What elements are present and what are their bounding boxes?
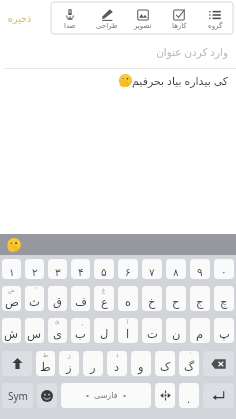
staticText: وارد کردن عنوان xyxy=(0,45,228,59)
staticText: ه xyxy=(125,295,132,308)
staticText: ئ xyxy=(55,319,60,325)
button[interactable]: طراحی xyxy=(88,2,125,34)
staticText: و xyxy=(138,360,144,373)
staticText: ع xyxy=(101,295,108,308)
button[interactable]: Shift xyxy=(2,351,32,376)
button[interactable]: تصویر xyxy=(125,2,161,34)
button[interactable]: چ xyxy=(214,286,234,311)
button[interactable]: ٍ xyxy=(71,318,90,343)
button[interactable]: Backspace xyxy=(203,351,234,376)
button[interactable]: Emoji xyxy=(37,383,57,408)
button[interactable]: Move cursor xyxy=(155,383,175,408)
staticText: ۸ xyxy=(173,266,179,278)
button[interactable]: ۳ xyxy=(48,259,67,279)
button[interactable]: ئ xyxy=(48,318,67,343)
staticText: ۵ xyxy=(101,266,107,278)
staticText: طراحی xyxy=(96,22,118,30)
staticText: م xyxy=(196,327,204,340)
button[interactable]: ف xyxy=(71,286,90,311)
button[interactable]: ض xyxy=(2,286,21,311)
staticText: ۱ xyxy=(9,266,15,278)
staticText: ج xyxy=(196,295,204,308)
button[interactable]: آ xyxy=(118,318,138,343)
staticText: ۷ xyxy=(149,266,155,278)
button[interactable]: ۹ xyxy=(190,259,210,279)
staticText: ل xyxy=(100,327,109,340)
staticText: چ xyxy=(220,295,228,308)
staticText: صدا xyxy=(64,22,76,30)
button[interactable]: صدا xyxy=(51,2,88,34)
button[interactable]: کارها xyxy=(161,2,197,34)
button[interactable]: ۰ xyxy=(214,259,234,279)
staticText: . xyxy=(187,391,191,407)
button[interactable]: خ xyxy=(142,286,162,311)
staticText: ر xyxy=(90,360,96,373)
staticText: ک xyxy=(160,360,171,373)
button[interactable]: ن xyxy=(166,318,186,343)
button[interactable]: ق xyxy=(48,286,67,311)
button[interactable]: پ xyxy=(214,318,234,343)
staticText: ۰ xyxy=(221,266,227,278)
staticText: ۳ xyxy=(55,266,61,278)
button[interactable]: Sym xyxy=(2,383,33,408)
button[interactable]: . xyxy=(179,383,199,408)
button[interactable]: ت xyxy=(142,318,162,343)
button[interactable]: ح xyxy=(166,286,186,311)
staticText: ۴ xyxy=(78,266,84,278)
staticText: ت xyxy=(147,327,158,340)
button[interactable]: ک xyxy=(155,351,175,376)
button[interactable]: گروه xyxy=(197,2,233,34)
button[interactable]: ل xyxy=(94,318,114,343)
button[interactable]: فارسی xyxy=(61,383,151,408)
button[interactable]: ۴ xyxy=(71,259,90,279)
staticText: گروه xyxy=(208,22,223,30)
button[interactable]: ۷ xyxy=(142,259,162,279)
staticText: ف xyxy=(75,295,87,308)
button[interactable]: م xyxy=(190,318,210,343)
button[interactable]: ش xyxy=(2,318,21,343)
staticText: کارها xyxy=(172,22,187,30)
staticText: ۹ xyxy=(197,266,203,278)
staticText: ص xyxy=(5,295,19,308)
staticText: Sym xyxy=(8,389,28,403)
button[interactable]: س xyxy=(25,318,44,343)
staticText: آ xyxy=(127,319,129,325)
staticText: ذ xyxy=(116,352,119,358)
staticText: ا xyxy=(126,327,130,340)
staticText: ز xyxy=(66,360,72,373)
button[interactable]: ٌ xyxy=(25,286,44,311)
staticText: د xyxy=(114,360,120,373)
button[interactable]: ۵ xyxy=(94,259,114,279)
staticText: ش xyxy=(4,327,19,340)
button[interactable]: ذخیره xyxy=(8,13,32,24)
button[interactable]: Enter xyxy=(203,383,234,408)
staticText: ۲ xyxy=(32,266,38,278)
staticText: فارسی xyxy=(94,391,118,400)
staticText: گ xyxy=(184,360,195,373)
button[interactable]: ۱ xyxy=(2,259,21,279)
button[interactable]: ژ xyxy=(59,351,79,376)
staticText: ظ xyxy=(43,352,49,358)
button[interactable]: ر xyxy=(83,351,103,376)
staticText: پ xyxy=(219,327,230,340)
staticText: ی xyxy=(53,327,63,340)
staticText: س xyxy=(27,327,42,340)
staticText: خ xyxy=(148,295,156,308)
button[interactable]: ظ xyxy=(36,351,55,376)
staticText: ژ xyxy=(68,352,71,358)
staticText: ط xyxy=(40,360,51,373)
staticText: ۶ xyxy=(125,266,131,278)
button[interactable]: ج xyxy=(190,286,210,311)
staticText: تصویر xyxy=(134,22,152,30)
button[interactable]: و xyxy=(131,351,151,376)
button[interactable]: ٔ xyxy=(179,351,199,376)
button[interactable]: ذ xyxy=(107,351,127,376)
button[interactable]: ۲ xyxy=(25,259,44,279)
staticText: ق xyxy=(53,295,62,308)
button[interactable]: ۸ xyxy=(166,259,186,279)
button[interactable]: ۶ xyxy=(118,259,138,279)
button[interactable]: غ xyxy=(94,286,114,311)
staticText: ض xyxy=(8,287,15,293)
staticText: ن xyxy=(172,327,181,340)
button[interactable]: ه xyxy=(118,286,138,311)
